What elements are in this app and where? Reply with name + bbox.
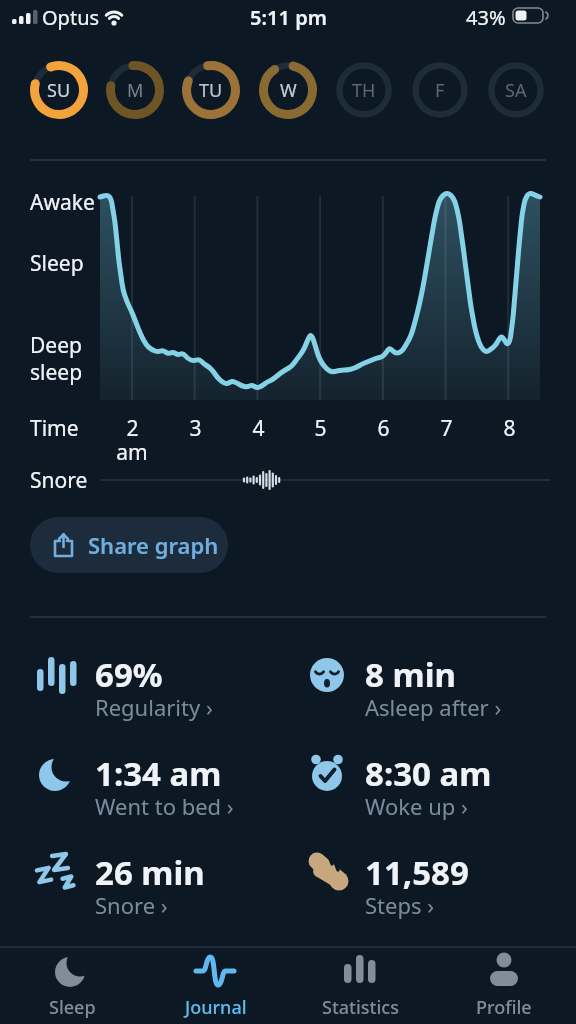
staticText: Snore ›: [95, 890, 168, 920]
staticText: Time: [30, 414, 79, 443]
button[interactable]: TU: [182, 61, 240, 119]
staticText: Optus: [42, 4, 100, 31]
staticText: 4: [252, 414, 265, 443]
button[interactable]: Share graph: [30, 517, 228, 573]
staticText: Statistics: [322, 995, 399, 1020]
staticText: 5:11 pm: [250, 4, 327, 31]
button[interactable]: Journal: [156, 948, 276, 1024]
staticText: Steps ›: [365, 890, 435, 920]
staticText: 26 min: [95, 850, 205, 895]
button[interactable]: 11,589: [305, 850, 545, 932]
button[interactable]: Statistics: [300, 948, 420, 1024]
staticText: Journal: [185, 995, 247, 1020]
button[interactable]: F: [411, 61, 469, 119]
button[interactable]: M: [106, 61, 164, 119]
button[interactable]: TH: [335, 61, 393, 119]
staticText: 2: [126, 414, 139, 443]
button[interactable]: 1:34 am: [35, 751, 275, 833]
staticText: 6: [377, 414, 390, 443]
staticText: 7: [440, 414, 453, 443]
button[interactable]: 8:30 am: [305, 751, 545, 833]
staticText: 8:30 am: [365, 751, 492, 796]
staticText: TH: [352, 78, 376, 103]
button[interactable]: W: [259, 61, 317, 119]
staticText: W: [280, 78, 297, 103]
staticText: Sleep: [49, 995, 96, 1020]
staticText: 1:34 am: [95, 751, 222, 796]
staticText: Share graph: [88, 530, 219, 560]
staticText: 8: [503, 414, 516, 443]
staticText: Asleep after ›: [365, 692, 502, 722]
staticText: TU: [199, 78, 223, 103]
staticText: Snore: [30, 466, 88, 495]
staticText: 11,589: [365, 850, 469, 895]
staticText: SA: [505, 78, 527, 103]
staticText: Awake: [30, 188, 95, 217]
button[interactable]: 8 min: [305, 652, 545, 734]
button[interactable]: SA: [487, 61, 545, 119]
staticText: Regularity ›: [95, 692, 213, 722]
button[interactable]: SU: [30, 61, 88, 119]
button[interactable]: Profile: [444, 948, 564, 1024]
button[interactable]: Sleep: [12, 948, 132, 1024]
staticText: Sleep: [30, 249, 84, 278]
staticText: 3: [189, 414, 202, 443]
staticText: F: [435, 78, 445, 103]
staticText: Profile: [476, 995, 532, 1020]
staticText: 43%: [466, 4, 506, 31]
staticText: 8 min: [365, 652, 456, 697]
staticText: 5: [314, 414, 327, 443]
staticText: 69%: [95, 652, 163, 697]
staticText: Woke up ›: [365, 791, 468, 821]
staticText: Went to bed ›: [95, 791, 234, 821]
staticText: SU: [47, 78, 71, 103]
staticText: sleep: [30, 358, 83, 387]
staticText: Deep: [30, 331, 82, 360]
staticText: M: [127, 78, 144, 103]
button[interactable]: 69%: [35, 652, 275, 734]
button[interactable]: 26 min: [35, 850, 275, 932]
staticText: am: [116, 438, 148, 467]
